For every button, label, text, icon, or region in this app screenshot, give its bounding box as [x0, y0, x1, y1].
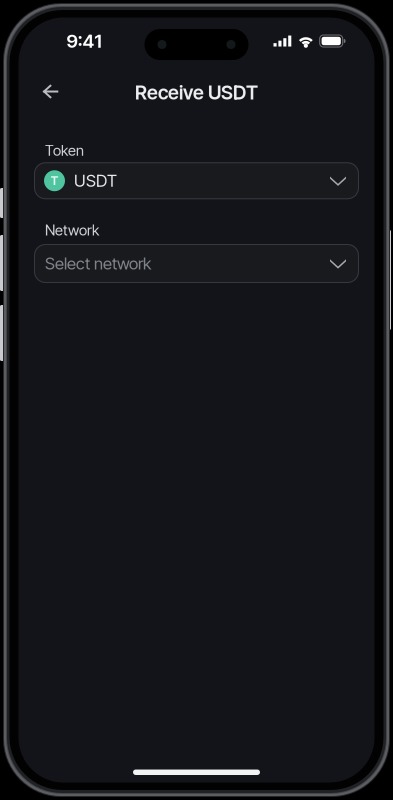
staticText: USDT	[74, 171, 117, 191]
staticText: Token	[45, 141, 84, 159]
button[interactable]: T	[34, 162, 359, 199]
staticText: Select network	[45, 253, 151, 274]
staticText: T	[50, 173, 58, 188]
button[interactable]: Back	[28, 68, 72, 110]
staticText: Receive USDT	[135, 81, 258, 104]
button[interactable]: Select network	[34, 244, 359, 283]
staticText: 9:41	[66, 30, 101, 52]
staticText: Network	[45, 221, 99, 239]
